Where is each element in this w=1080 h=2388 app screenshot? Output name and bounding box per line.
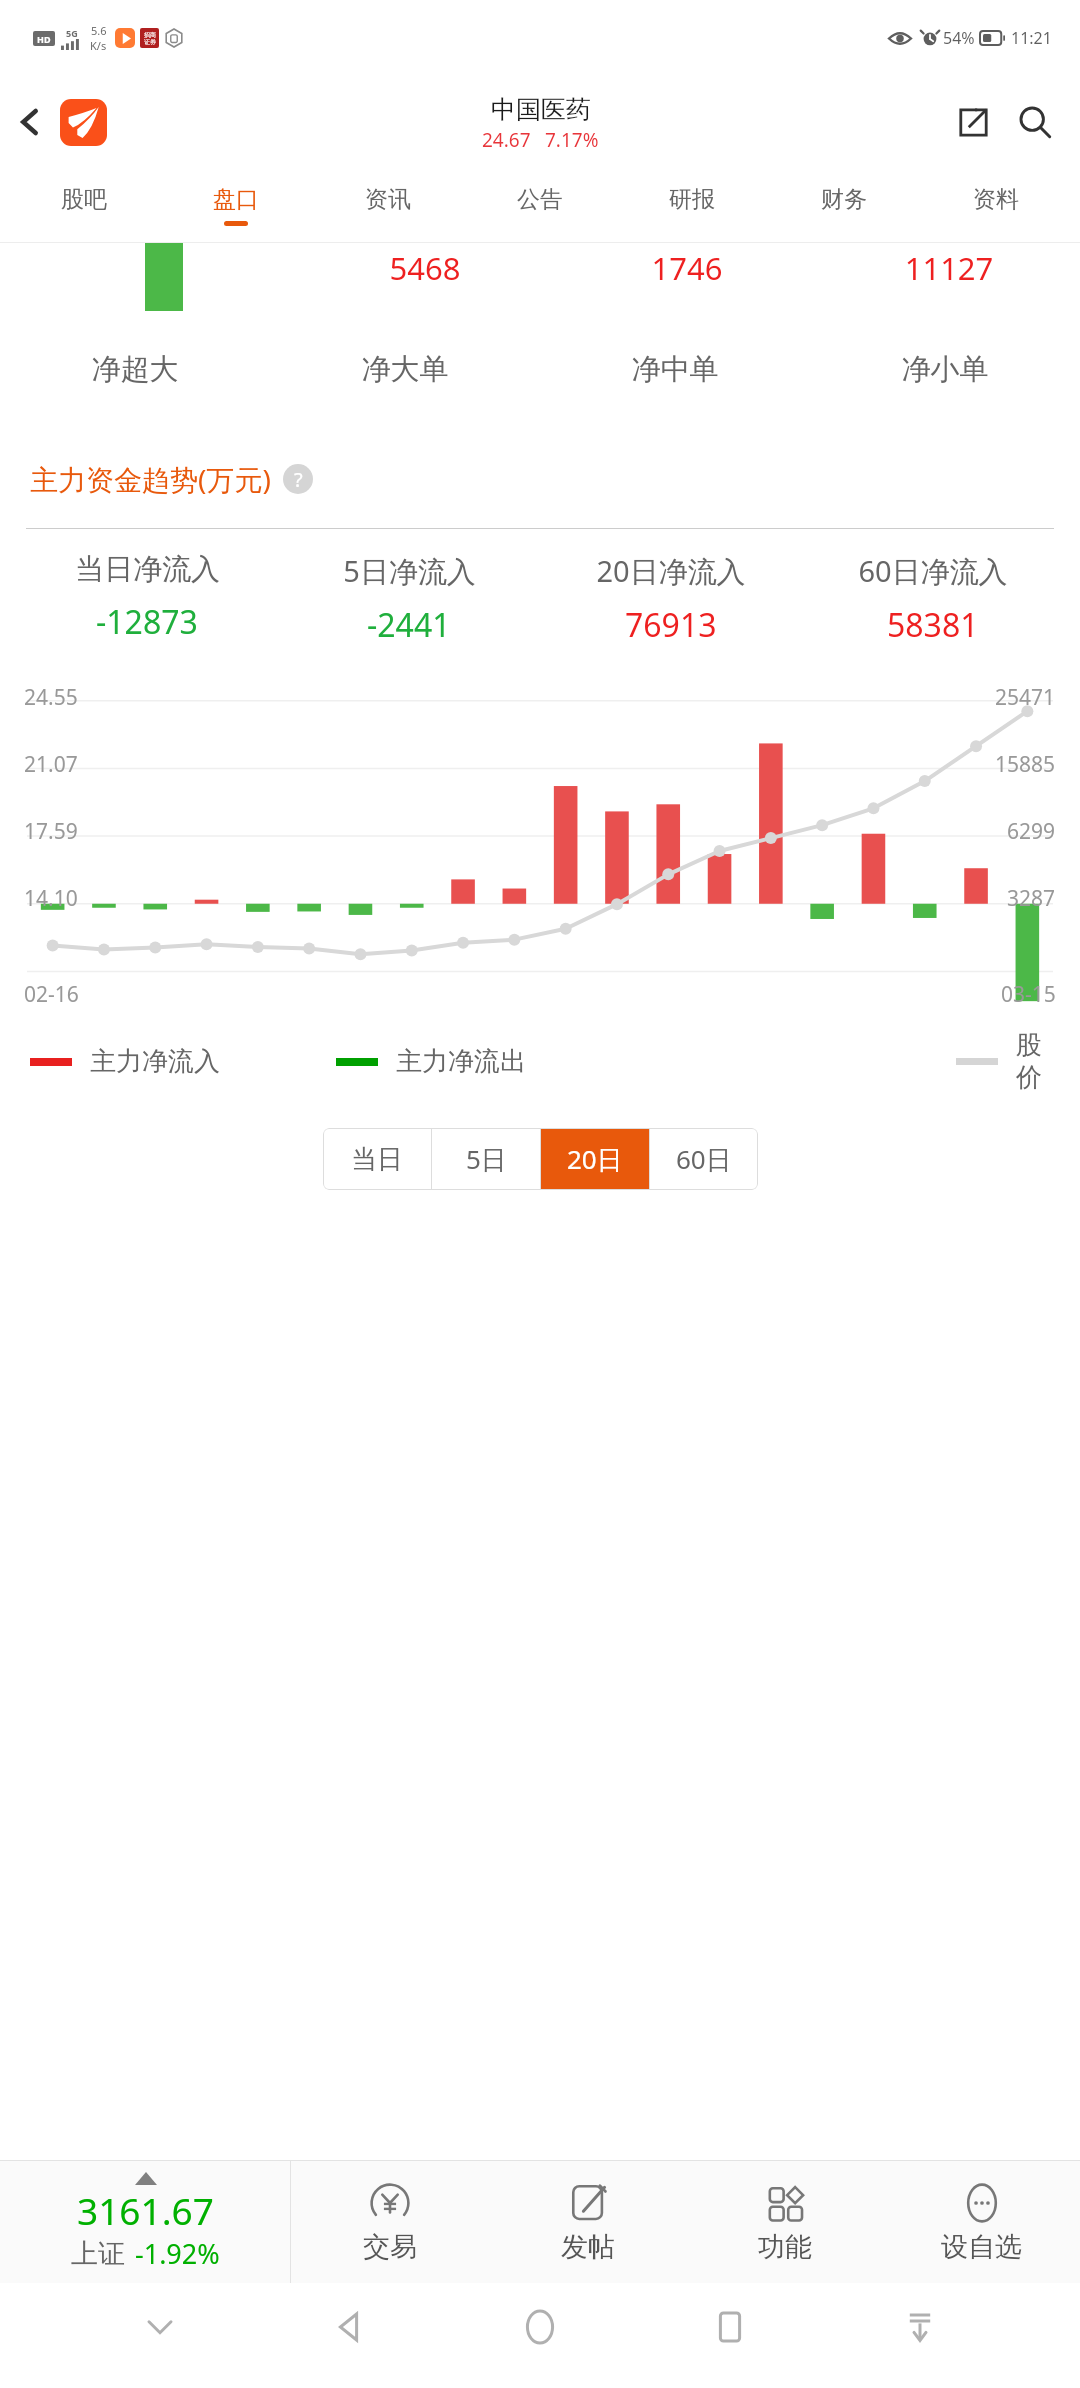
staticText: 58381 — [887, 603, 979, 647]
staticText: HD — [37, 33, 51, 45]
staticText: 14.10 — [24, 884, 78, 913]
staticText: 招商 证券 — [144, 31, 156, 46]
button[interactable]: 20日 — [541, 1128, 649, 1190]
staticText: 净中单 — [540, 351, 810, 388]
staticText: 54% — [943, 27, 975, 49]
staticText: 资料 — [973, 185, 1019, 214]
staticText: 主力净流出 — [396, 1045, 526, 1078]
staticText: 净小单 — [810, 351, 1080, 388]
staticText: 7.17% — [545, 127, 599, 153]
button[interactable]: App logo — [60, 99, 107, 146]
staticText: -12873 — [96, 600, 198, 644]
button[interactable]: 5日 — [432, 1128, 540, 1190]
button[interactable]: 研报 — [616, 168, 768, 242]
staticText: 5.6 — [91, 23, 107, 38]
staticText: K/s — [90, 38, 107, 53]
button[interactable]: 公告 — [464, 168, 616, 242]
staticText: 财务 — [821, 185, 867, 214]
staticText: 20日 — [567, 1141, 623, 1177]
button[interactable]: Download — [890, 2297, 950, 2357]
staticText: 主力净流入 — [90, 1045, 220, 1078]
staticText: 24.55 — [24, 683, 78, 712]
button[interactable]: 3161.67 — [0, 2161, 290, 2283]
staticText: 76913 — [625, 603, 717, 647]
button[interactable]: 设自选 — [883, 2161, 1080, 2283]
staticText: 15885 — [995, 750, 1056, 779]
staticText: 21.07 — [24, 750, 78, 779]
staticText: 1746 — [556, 247, 818, 289]
button[interactable]: 交易 — [291, 2161, 489, 2283]
staticText: 60日净流入 — [858, 551, 1008, 591]
button[interactable]: Recents — [700, 2297, 760, 2357]
staticText: 24.67 — [482, 127, 531, 153]
staticText: 当日净流入 — [75, 551, 220, 588]
staticText: 公告 — [517, 185, 563, 214]
staticText: 股吧 — [61, 185, 107, 214]
button[interactable]: 财务 — [768, 168, 920, 242]
staticText: 中国医药 — [491, 94, 591, 125]
button[interactable]: 当日 — [323, 1128, 431, 1190]
button[interactable]: 发帖 — [489, 2161, 686, 2283]
staticText: 功能 — [758, 2230, 812, 2264]
staticText: 股 价 — [1016, 1029, 1042, 1094]
button[interactable]: Share — [942, 91, 1004, 153]
staticText: 02-16 — [24, 980, 79, 1009]
staticText: 3161.67 — [77, 2185, 214, 2235]
staticText: 盘口 — [213, 185, 259, 214]
button[interactable]: Search — [1004, 91, 1066, 153]
button[interactable]: Collapse — [130, 2297, 190, 2357]
button[interactable]: 资讯 — [312, 168, 464, 242]
staticText: 3287 — [1007, 884, 1056, 913]
staticText: 11127 — [818, 247, 1080, 289]
button[interactable]: 资料 — [920, 168, 1072, 242]
button[interactable]: Back — [0, 92, 60, 152]
staticText: 6299 — [1007, 817, 1056, 846]
button[interactable]: Home — [510, 2297, 570, 2357]
staticText: 5日 — [466, 1141, 507, 1177]
button[interactable]: Back — [320, 2297, 380, 2357]
button[interactable]: Help — [283, 464, 313, 494]
staticText: 60日 — [676, 1141, 732, 1177]
staticText: 25471 — [995, 683, 1056, 712]
staticText: 5G — [66, 27, 78, 39]
staticText: 发帖 — [561, 2230, 615, 2264]
staticText: ? — [294, 466, 303, 493]
staticText: 03-15 — [1001, 980, 1056, 1009]
staticText: 17.59 — [24, 817, 78, 846]
staticText: 净超大 — [0, 351, 270, 388]
button[interactable]: 功能 — [686, 2161, 883, 2283]
staticText: 11:21 — [1011, 27, 1052, 49]
staticText: -2441 — [367, 603, 451, 647]
button[interactable]: 股吧 — [8, 168, 160, 242]
staticText: 设自选 — [941, 2230, 1022, 2264]
staticText: -1.92% — [135, 2235, 220, 2272]
staticText: 资讯 — [365, 185, 411, 214]
staticText: 研报 — [669, 185, 715, 214]
staticText: 5468 — [294, 247, 556, 289]
staticText: 交易 — [363, 2230, 417, 2264]
staticText: 当日 — [351, 1143, 403, 1176]
staticText: 5日净流入 — [343, 551, 476, 591]
staticText: 上证 — [71, 2237, 125, 2271]
button[interactable]: 60日 — [650, 1128, 758, 1190]
button[interactable]: 盘口 — [160, 168, 312, 242]
staticText: 主力资金趋势(万元) — [30, 460, 271, 498]
staticText: 20日净流入 — [596, 551, 746, 591]
staticText: 净大单 — [270, 351, 540, 388]
